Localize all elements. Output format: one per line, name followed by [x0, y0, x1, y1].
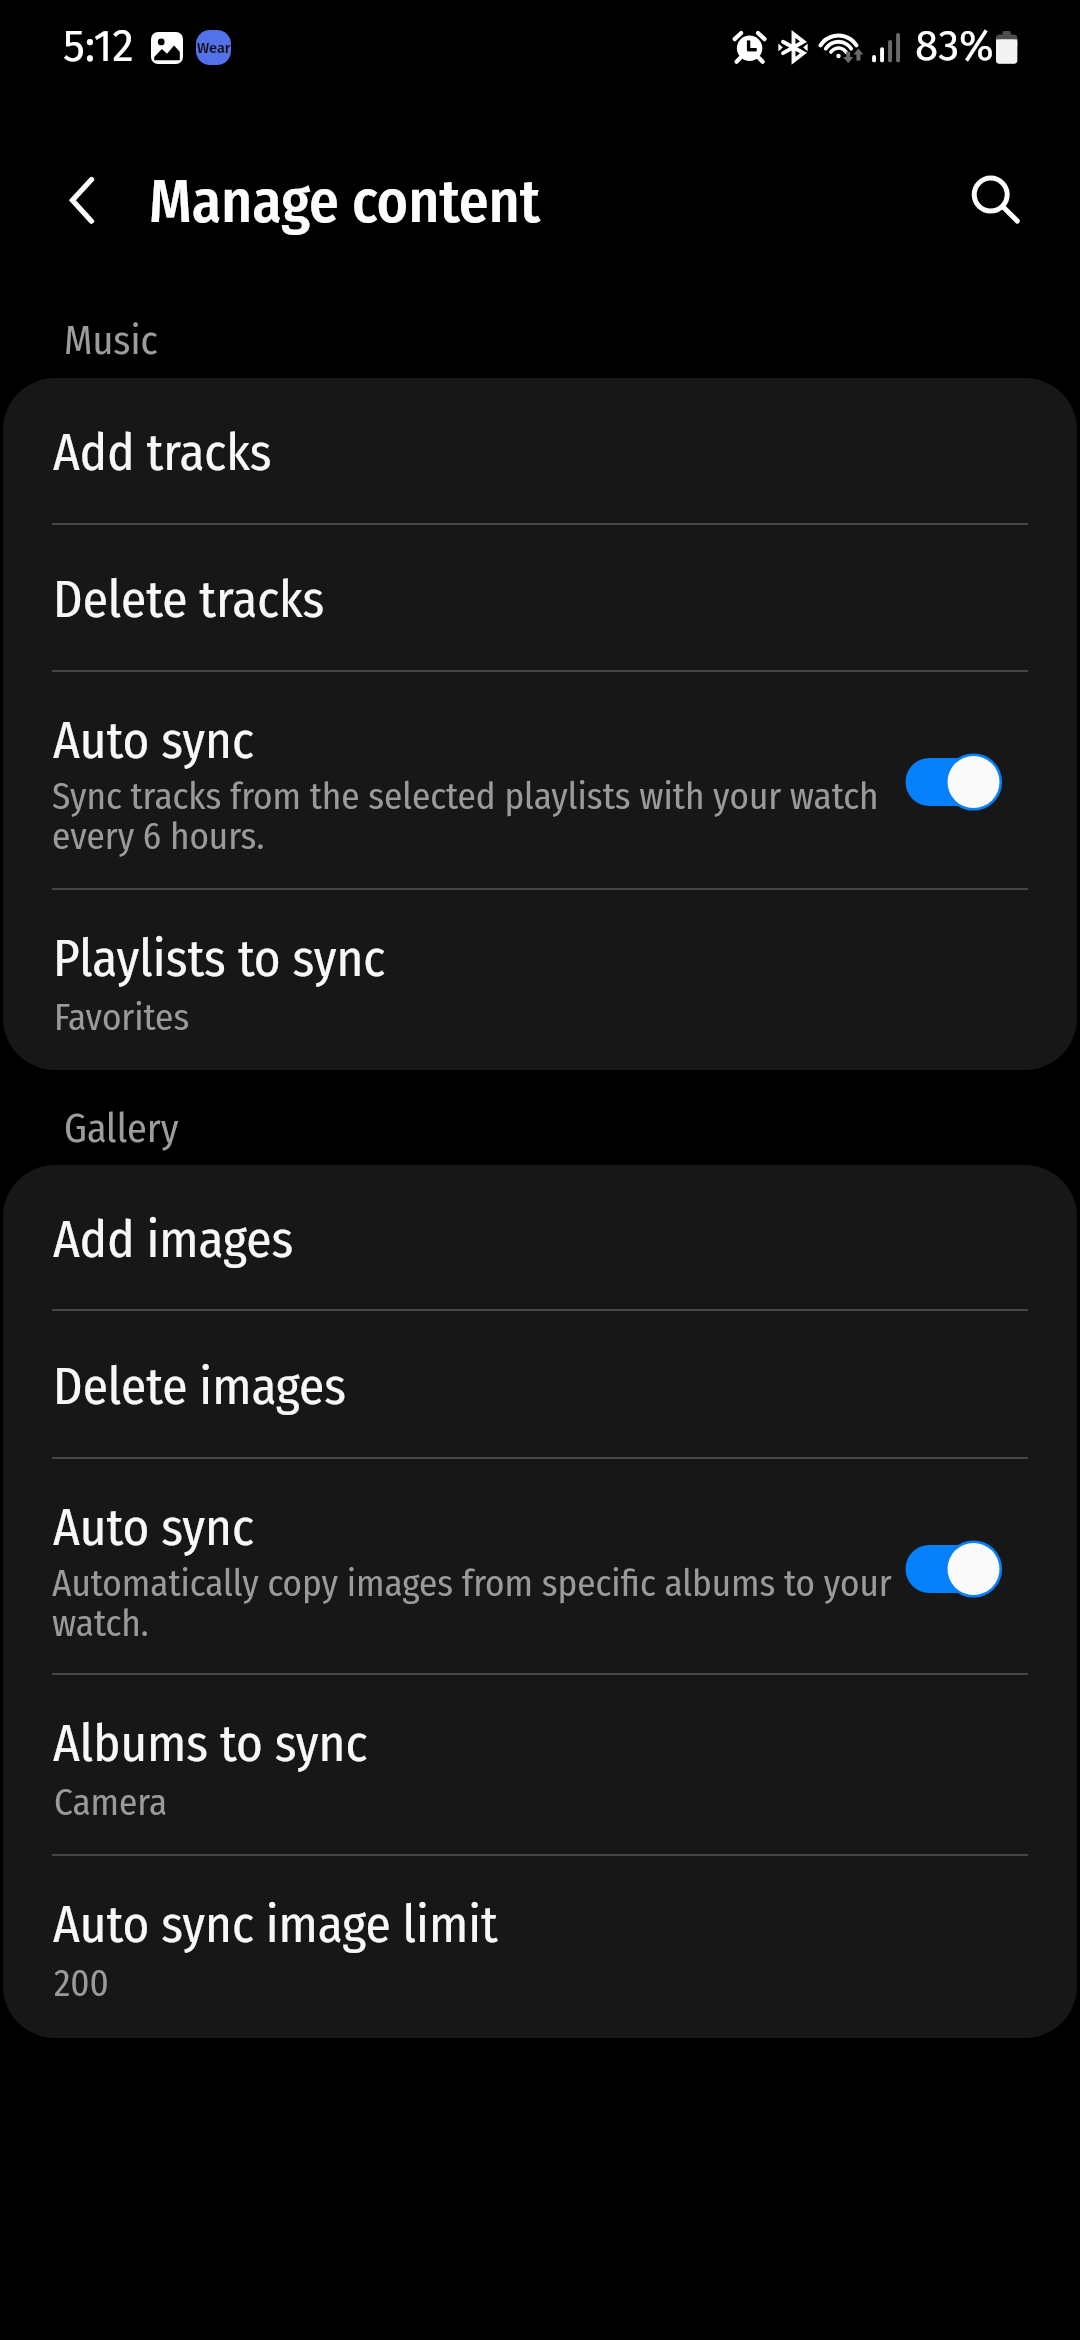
staticText: 5:12: [63, 20, 134, 72]
staticText: Albums to sync: [53, 1713, 368, 1774]
button[interactable]: Auto sync toggle, on: [899, 1531, 1007, 1607]
staticText: Favorites: [54, 995, 190, 1039]
staticText: Add images: [53, 1209, 294, 1270]
staticText: Auto sync: [53, 710, 254, 771]
staticText: Sync tracks from the selected playlists …: [52, 778, 904, 858]
staticText: Delete images: [53, 1356, 346, 1417]
staticText: Camera: [54, 1780, 168, 1824]
staticText: 83%: [915, 21, 994, 71]
button[interactable]: Auto sync: [3, 1459, 1077, 1673]
button[interactable]: Search: [958, 156, 1042, 240]
staticText: Wear: [197, 39, 231, 56]
staticText: Manage content: [149, 166, 541, 237]
button[interactable]: Playlists to sync: [3, 890, 1077, 1070]
button[interactable]: Auto sync: [3, 672, 1077, 888]
button[interactable]: Add tracks: [3, 378, 1077, 523]
staticText: Automatically copy images from specific …: [52, 1565, 904, 1645]
button[interactable]: Auto sync toggle, on: [899, 744, 1007, 820]
staticText: 200: [54, 1961, 109, 2005]
staticText: Add tracks: [53, 422, 272, 483]
staticText: Auto sync: [53, 1497, 254, 1558]
staticText: Auto sync image limit: [53, 1894, 498, 1955]
staticText: Gallery: [64, 1105, 179, 1153]
button[interactable]: Auto sync image limit: [3, 1856, 1077, 2038]
button[interactable]: Albums to sync: [3, 1675, 1077, 1854]
button[interactable]: Navigate up: [39, 156, 123, 240]
button[interactable]: Delete images: [3, 1311, 1077, 1457]
button[interactable]: Add images: [3, 1165, 1077, 1309]
staticText: Playlists to sync: [53, 928, 386, 989]
staticText: Music: [64, 317, 158, 365]
staticText: Delete tracks: [53, 569, 325, 630]
button[interactable]: Delete tracks: [3, 525, 1077, 670]
